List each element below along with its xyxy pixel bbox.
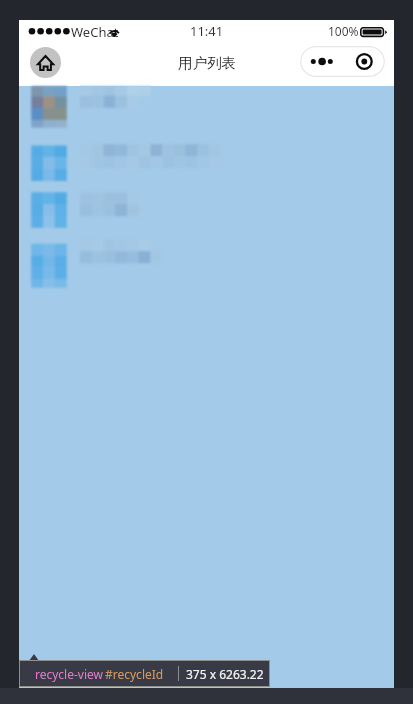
button[interactable]: Home [30,47,61,78]
staticText: 375 x 6263.22 [186,666,264,682]
staticText: recycle-view [35,666,104,682]
button[interactable]: Menu [300,46,385,77]
button[interactable]: User list [19,86,394,688]
staticText: 11:41 [190,22,224,40]
staticText: #recycleId [105,666,164,682]
staticText: WeChat [71,23,119,41]
staticText: 100% [328,23,359,39]
staticText: 用户列表 [178,54,236,72]
